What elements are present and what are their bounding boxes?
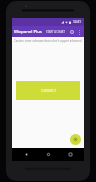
button[interactable]: Recent apps (62, 148, 78, 161)
button[interactable]: Add (70, 134, 81, 145)
staticText: Caution: some unknown device don't suppo… (14, 39, 82, 43)
staticText: START A CHART (46, 30, 65, 34)
staticText: 14:31 (73, 20, 82, 24)
button[interactable]: Refresh (68, 28, 75, 35)
button[interactable]: CONNECT (16, 81, 80, 100)
button[interactable]: Back (18, 148, 34, 161)
button[interactable]: Home (40, 148, 56, 161)
button[interactable]: START A CHART (45, 29, 66, 35)
button[interactable]: More options (76, 29, 82, 35)
staticText: Mixpanel Plus (14, 29, 42, 35)
staticText: CONNECT (41, 89, 56, 93)
